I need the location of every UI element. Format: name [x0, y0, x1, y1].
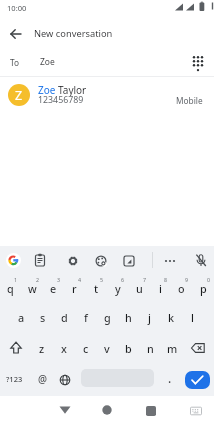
button[interactable]: [187, 51, 209, 75]
button[interactable]: v: [96, 333, 117, 363]
button[interactable]: n: [140, 333, 161, 363]
button[interactable]: [90, 250, 112, 272]
button[interactable]: p: [193, 273, 214, 303]
button[interactable]: [62, 250, 84, 272]
staticText: x: [61, 341, 67, 356]
staticText: .: [168, 370, 172, 386]
staticText: 8: [164, 276, 168, 283]
button[interactable]: [159, 250, 181, 272]
button[interactable]: m: [162, 333, 183, 363]
staticText: n: [147, 341, 154, 356]
staticText: 1: [14, 276, 18, 283]
button[interactable]: [52, 397, 78, 423]
staticText: 10:00: [7, 3, 27, 13]
staticText: 4: [78, 276, 82, 283]
button[interactable]: u: [129, 273, 150, 303]
staticText: e: [50, 281, 57, 296]
button[interactable]: w: [22, 273, 43, 303]
button[interactable]: ?123: [1, 365, 28, 393]
button[interactable]: [4, 22, 28, 46]
staticText: p: [200, 281, 207, 296]
staticText: f: [84, 310, 88, 325]
button[interactable]: s: [32, 302, 53, 332]
staticText: g: [104, 310, 111, 325]
staticText: 123456789: [38, 94, 84, 106]
staticText: 5: [100, 276, 104, 283]
staticText: Mobile: [176, 95, 203, 106]
staticText: c: [83, 341, 89, 356]
button[interactable]: x: [53, 333, 74, 363]
button[interactable]: e: [43, 273, 64, 303]
staticText: q: [7, 281, 14, 296]
button[interactable]: [94, 397, 120, 423]
staticText: t: [94, 281, 99, 296]
staticText: Zoe Taylor: [38, 83, 87, 96]
button[interactable]: b: [118, 333, 139, 363]
button[interactable]: @: [32, 365, 52, 393]
staticText: r: [72, 281, 77, 296]
button[interactable]: g: [97, 302, 118, 332]
staticText: i: [159, 281, 162, 296]
staticText: Z: [15, 87, 23, 104]
staticText: y: [115, 281, 121, 296]
staticText: v: [104, 341, 110, 356]
button[interactable]: k: [161, 302, 182, 332]
staticText: h: [125, 310, 132, 325]
button[interactable]: [185, 371, 210, 389]
button[interactable]: r: [64, 273, 85, 303]
staticText: m: [167, 341, 178, 356]
button[interactable]: [0, 77, 214, 113]
button[interactable]: [184, 333, 212, 363]
staticText: 9: [185, 276, 189, 283]
button[interactable]: t: [86, 273, 107, 303]
button[interactable]: [29, 249, 51, 271]
staticText: w: [28, 281, 37, 296]
button[interactable]: [6, 253, 21, 268]
staticText: j: [148, 310, 151, 325]
staticText: l: [191, 310, 194, 325]
button[interactable]: o: [171, 273, 192, 303]
staticText: o: [178, 281, 185, 296]
button[interactable]: a: [11, 302, 32, 332]
staticText: To: [10, 57, 20, 68]
button[interactable]: [186, 403, 206, 419]
staticText: 6: [121, 276, 125, 283]
button[interactable]: [138, 398, 164, 424]
staticText: z: [39, 341, 45, 356]
staticText: k: [168, 310, 175, 325]
staticText: a: [18, 310, 25, 325]
staticText: 7: [143, 276, 147, 283]
staticText: 3: [57, 276, 61, 283]
staticText: d: [61, 310, 68, 325]
staticText: 2: [36, 276, 40, 283]
staticText: @: [38, 372, 47, 386]
staticText: s: [40, 310, 46, 325]
button[interactable]: q: [0, 273, 21, 303]
button[interactable]: [190, 250, 212, 272]
staticText: 0: [207, 276, 211, 283]
button[interactable]: h: [118, 302, 139, 332]
button[interactable]: .: [162, 364, 178, 392]
button[interactable]: [118, 250, 140, 272]
button[interactable]: [54, 366, 76, 394]
button[interactable]: c: [75, 333, 96, 363]
staticText: Zoe: [40, 56, 55, 68]
button[interactable]: i: [150, 273, 171, 303]
button[interactable]: j: [139, 302, 160, 332]
staticText: b: [125, 341, 132, 356]
button[interactable]: f: [75, 302, 96, 332]
staticText: u: [136, 281, 143, 296]
button[interactable]: z: [31, 333, 52, 363]
staticText: ?123: [6, 374, 23, 384]
button[interactable]: l: [182, 302, 203, 332]
button[interactable]: [2, 333, 30, 363]
button[interactable]: [0, 49, 214, 76]
button[interactable]: y: [107, 273, 128, 303]
staticText: New conversation: [34, 27, 113, 40]
button[interactable]: d: [54, 302, 75, 332]
